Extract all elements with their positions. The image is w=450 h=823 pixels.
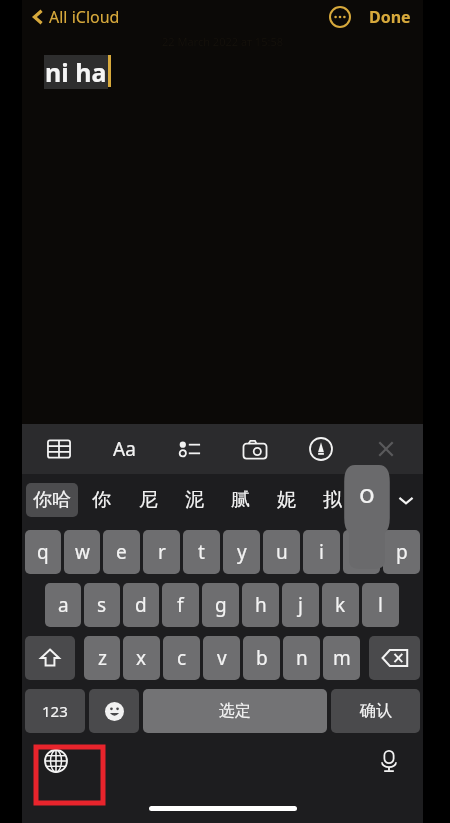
button[interactable]: i — [303, 530, 340, 574]
staticText: 确认 — [360, 701, 392, 721]
staticText: 泥 — [185, 488, 204, 512]
button[interactable]: y — [223, 530, 260, 574]
button[interactable]: Shift — [25, 636, 75, 680]
button[interactable]: 尼 — [125, 488, 171, 512]
button[interactable]: 腻 — [217, 488, 263, 512]
staticText: c — [177, 645, 187, 671]
staticText: j — [298, 592, 303, 618]
button[interactable]: v — [203, 636, 240, 680]
staticText: i — [319, 539, 324, 565]
button[interactable]: Expand candidates — [395, 489, 417, 511]
staticText: q — [37, 539, 49, 565]
staticText: d — [135, 592, 147, 618]
button[interactable]: c — [163, 636, 200, 680]
button[interactable]: Dictation — [369, 741, 409, 781]
button[interactable]: s — [84, 583, 120, 627]
button[interactable]: Backspace — [369, 636, 420, 680]
staticText: Done — [369, 6, 411, 28]
button[interactable]: 拟 — [309, 488, 355, 512]
staticText: l — [378, 592, 383, 618]
button[interactable]: x — [123, 636, 160, 680]
staticText: 尼 — [139, 488, 158, 512]
button[interactable]: l — [362, 583, 399, 627]
staticText: e — [116, 539, 127, 565]
staticText: b — [256, 645, 268, 671]
staticText: v — [217, 645, 227, 671]
button[interactable]: z — [84, 636, 120, 680]
staticText: o — [359, 475, 375, 510]
button[interactable]: 你哈 — [26, 483, 78, 517]
staticText: f — [177, 592, 184, 618]
button[interactable]: a — [45, 583, 81, 627]
staticText: All iCloud — [49, 6, 120, 28]
button[interactable]: All iCloud — [30, 4, 122, 30]
staticText: x — [136, 645, 147, 671]
staticText: t — [198, 539, 205, 565]
button[interactable]: Emoji — [89, 689, 139, 733]
staticText: n — [296, 645, 308, 671]
staticText: y — [237, 539, 247, 565]
staticText: w — [75, 539, 90, 565]
staticText: 选定 — [219, 701, 251, 721]
staticText: z — [98, 645, 107, 671]
button[interactable]: Table — [44, 434, 74, 464]
staticText: u — [276, 539, 288, 565]
button[interactable]: Switch keyboard — [36, 741, 76, 781]
button[interactable]: 你 — [78, 488, 125, 512]
button[interactable]: f — [162, 583, 199, 627]
button[interactable]: m — [323, 636, 360, 680]
button[interactable]: r — [143, 530, 180, 574]
button[interactable]: n — [283, 636, 320, 680]
staticText: s — [97, 592, 107, 618]
button[interactable]: k — [322, 583, 359, 627]
staticText: 腻 — [231, 488, 250, 512]
staticText: 拟 — [323, 488, 342, 512]
button[interactable]: w — [64, 530, 100, 574]
staticText: p — [396, 539, 408, 565]
button[interactable]: Done — [365, 4, 415, 30]
button[interactable]: h — [242, 583, 279, 627]
button[interactable]: Markup — [306, 434, 336, 464]
button[interactable]: 妮 — [263, 488, 309, 512]
button[interactable]: p — [383, 530, 420, 574]
staticText: Aa — [113, 436, 136, 462]
button[interactable] — [343, 530, 380, 574]
button[interactable]: g — [202, 583, 239, 627]
button[interactable]: q — [25, 530, 61, 574]
staticText: r — [158, 539, 166, 565]
button[interactable]: d — [123, 583, 159, 627]
button[interactable]: Close keyboard — [371, 434, 401, 464]
button[interactable]: j — [282, 583, 319, 627]
button[interactable]: 123 — [25, 689, 85, 733]
staticText: 妮 — [277, 488, 296, 512]
button[interactable]: 选定 — [143, 689, 327, 733]
button[interactable]: Aa — [109, 434, 139, 464]
staticText: g — [215, 592, 227, 618]
button[interactable]: e — [103, 530, 140, 574]
button[interactable]: u — [263, 530, 300, 574]
button[interactable]: 确认 — [331, 689, 420, 733]
staticText: ni ha — [45, 55, 107, 89]
button[interactable]: Checklist — [175, 434, 205, 464]
button[interactable]: b — [243, 636, 280, 680]
staticText: 你 — [92, 488, 111, 512]
staticText: h — [255, 592, 267, 618]
staticText: 123 — [42, 701, 68, 721]
button[interactable]: t — [183, 530, 220, 574]
staticText: k — [335, 592, 346, 618]
staticText: a — [58, 592, 69, 618]
staticText: 你哈 — [33, 488, 71, 512]
staticText: m — [333, 645, 351, 671]
button[interactable]: 泥 — [171, 488, 217, 512]
button[interactable]: More options — [329, 6, 351, 28]
button[interactable]: Camera — [240, 434, 270, 464]
